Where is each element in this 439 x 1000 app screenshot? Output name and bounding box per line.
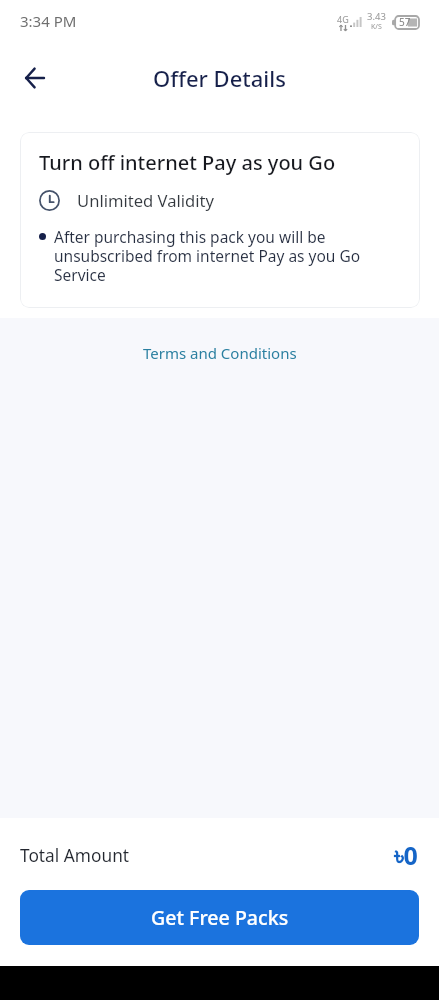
staticText: 4G — [337, 13, 349, 25]
staticText: Terms and Conditions — [143, 343, 297, 363]
button[interactable]: Terms and Conditions — [131, 339, 309, 367]
staticText: Offer Details — [153, 63, 286, 93]
staticText: K/S — [371, 22, 382, 32]
staticText: Turn off internet Pay as you Go — [39, 149, 336, 176]
staticText: ৳0 — [394, 838, 418, 872]
staticText: After purchasing this pack you will be u… — [54, 226, 364, 286]
staticText: 3:34 PM — [20, 11, 77, 31]
staticText: 3.43 — [367, 10, 386, 23]
staticText: Get Free Packs — [151, 904, 289, 931]
staticText: Unlimited Validity — [77, 189, 215, 212]
button[interactable]: Get Free Packs — [20, 890, 419, 945]
button[interactable]: Back — [11, 54, 59, 102]
staticText: Total Amount — [20, 844, 130, 868]
staticText: 57 — [399, 15, 411, 29]
